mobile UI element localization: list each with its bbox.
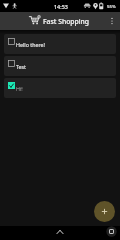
staticText: Test [16,63,27,70]
staticText: Hello there! [16,41,45,48]
button[interactable]: More options [103,12,120,30]
button[interactable]: Test [4,56,116,76]
button[interactable]: Back [53,225,67,239]
button[interactable]: Hi! [4,78,116,98]
staticText: 55% [107,3,116,9]
button[interactable]: Recents [106,226,117,237]
staticText: Hi! [16,85,23,92]
staticText: 14:53 [54,3,68,10]
button[interactable]: Add item [94,201,115,222]
staticText: Fast Shopping [43,17,90,26]
button[interactable]: Hello there! [4,34,116,54]
